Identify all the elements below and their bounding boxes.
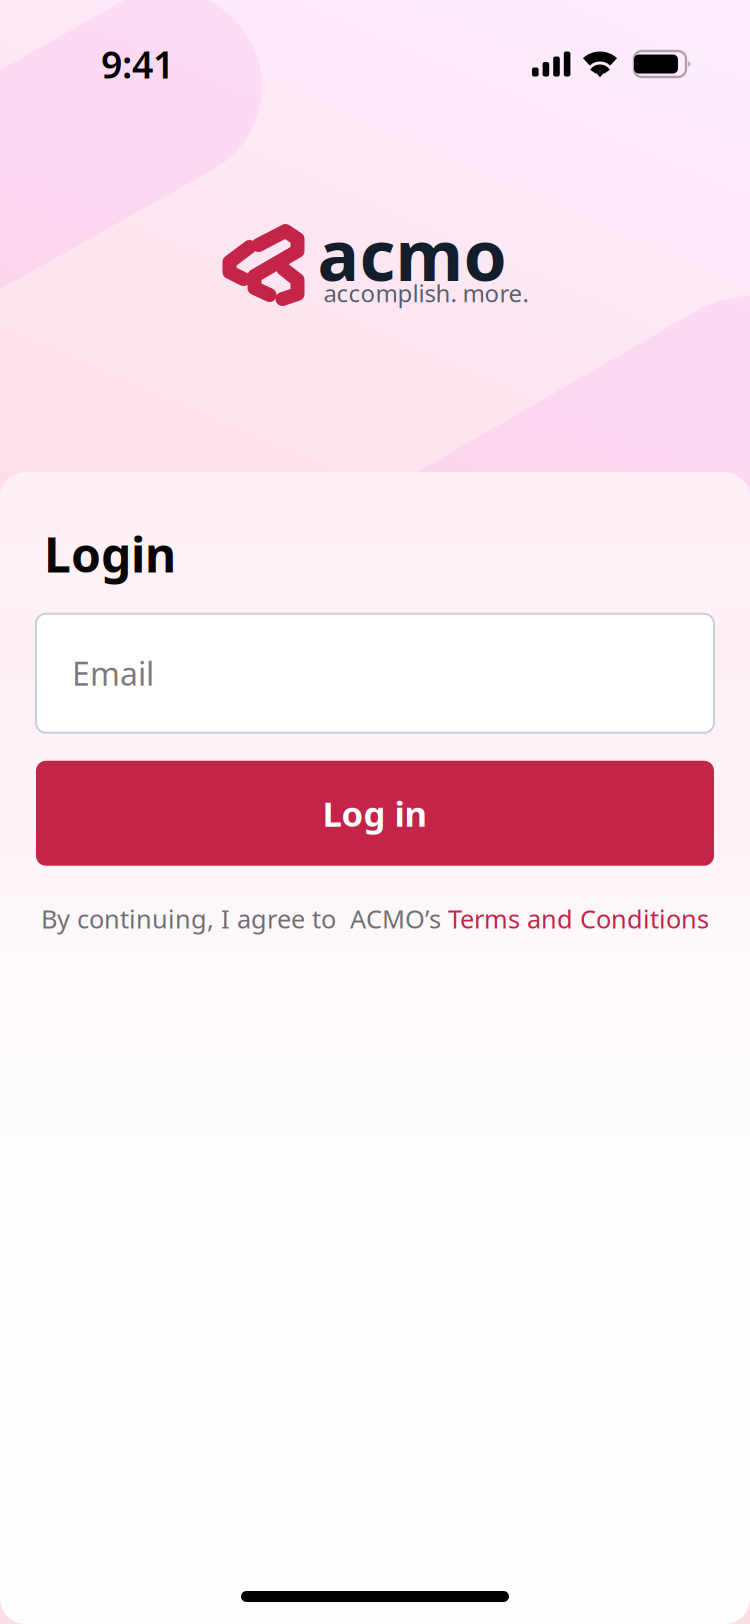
- staticText: Terms and Conditions: [448, 902, 709, 935]
- staticText: accomplish. more.: [323, 277, 528, 309]
- staticText: Log in: [322, 790, 427, 836]
- staticText: By continuing, I agree to ACMO’s: [41, 902, 448, 935]
- staticText: Email: [72, 652, 154, 694]
- button[interactable]: Terms and Conditions: [448, 902, 709, 935]
- staticText: 9:41: [101, 39, 174, 89]
- button[interactable]: Log in: [36, 761, 714, 866]
- staticText: acmo: [317, 208, 506, 300]
- staticText: Login: [44, 522, 176, 586]
